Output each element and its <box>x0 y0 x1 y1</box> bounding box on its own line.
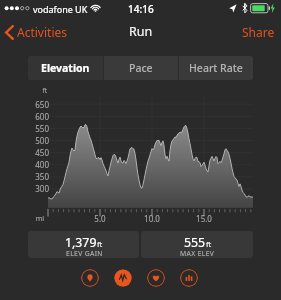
button[interactable]: Share <box>236 20 281 44</box>
button[interactable]: Pace <box>104 56 178 80</box>
button[interactable]: 1,379 <box>28 231 139 258</box>
button[interactable]: Elevation <box>28 56 103 80</box>
button[interactable]: Splits <box>180 269 198 287</box>
staticText: 400 <box>28 159 49 170</box>
staticText: MAX ELEV <box>180 249 215 258</box>
staticText: 10.0 <box>142 213 162 224</box>
button[interactable]: Activities <box>0 21 73 43</box>
staticText: ELEV GAIN <box>66 249 103 258</box>
button[interactable]: Heart rate <box>147 269 165 287</box>
staticText: vodafone UK <box>33 3 88 15</box>
staticText: ft <box>28 86 47 95</box>
button[interactable]: 555 <box>141 231 253 258</box>
button[interactable]: Heart Rate <box>179 56 253 80</box>
button[interactable]: Activity <box>114 269 132 287</box>
staticText: 350 <box>28 171 49 182</box>
staticText: 14:16 <box>128 2 154 16</box>
staticText: 500 <box>28 135 49 146</box>
staticText: Activities <box>17 24 67 40</box>
button[interactable]: Map <box>81 269 99 287</box>
staticText: ft <box>206 239 212 249</box>
staticText: 1,379 <box>65 234 97 251</box>
staticText: 550 <box>28 123 49 134</box>
staticText: Heart Rate <box>189 61 243 75</box>
staticText: ft <box>97 239 103 249</box>
staticText: 300 <box>28 183 49 194</box>
staticText: 15.0 <box>194 213 214 224</box>
staticText: 650 <box>28 99 49 110</box>
staticText: mi <box>28 214 44 224</box>
staticText: Pace <box>129 61 153 75</box>
staticText: Run <box>129 23 153 40</box>
staticText: 555 <box>184 234 206 251</box>
staticText: 600 <box>28 111 49 122</box>
staticText: Share <box>242 24 275 40</box>
staticText: 450 <box>28 147 49 158</box>
staticText: 5.0 <box>90 213 110 224</box>
staticText: Elevation <box>41 61 90 75</box>
